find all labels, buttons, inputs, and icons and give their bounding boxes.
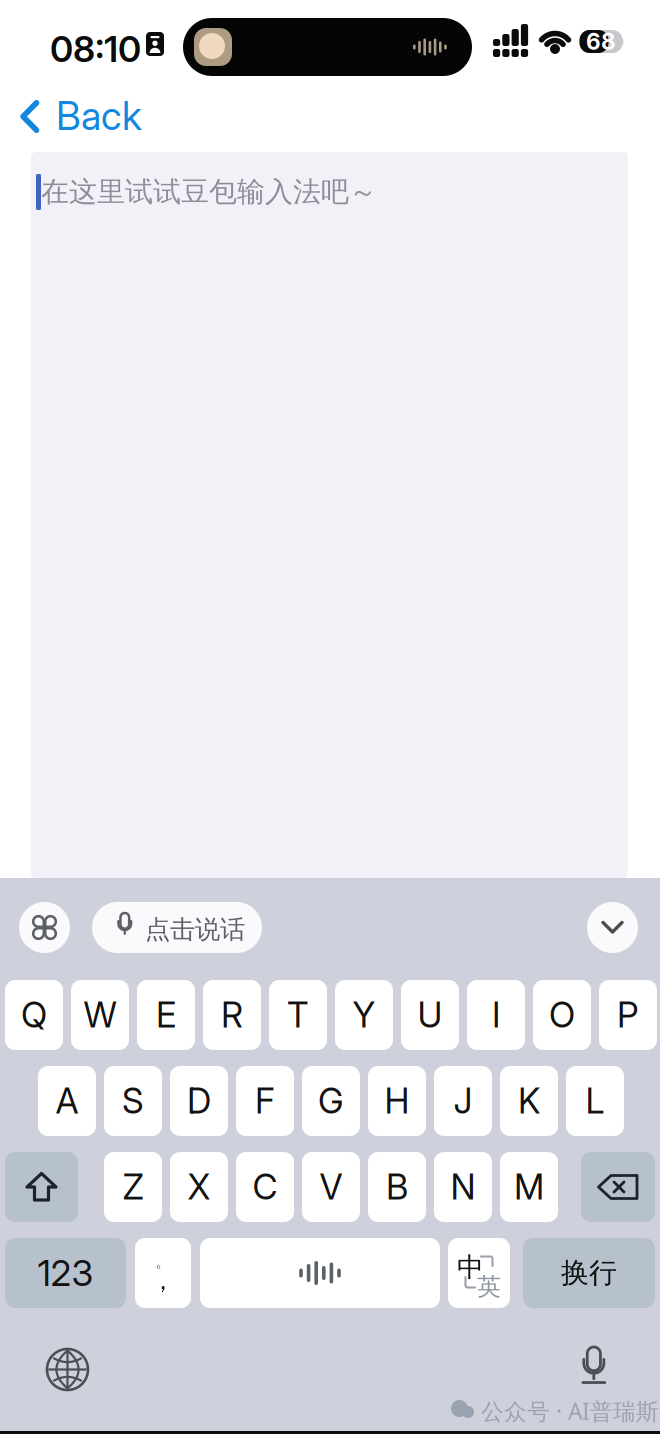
staticText: ， bbox=[151, 1266, 175, 1296]
button[interactable]: G bbox=[302, 1066, 360, 1136]
button[interactable]: Hide keyboard bbox=[587, 902, 638, 953]
staticText: Z bbox=[122, 1166, 143, 1208]
button[interactable]: Z bbox=[104, 1152, 162, 1222]
button[interactable]: I bbox=[467, 980, 525, 1050]
staticText: R bbox=[221, 994, 243, 1036]
button[interactable]: Comma bbox=[135, 1238, 191, 1308]
button[interactable]: U bbox=[401, 980, 459, 1050]
staticText: D bbox=[187, 1080, 211, 1122]
button[interactable]: B bbox=[368, 1152, 426, 1222]
button[interactable]: Y bbox=[335, 980, 393, 1050]
staticText: Back bbox=[56, 93, 142, 139]
staticText: I bbox=[492, 994, 500, 1036]
button[interactable]: L bbox=[566, 1066, 624, 1136]
button[interactable]: S bbox=[104, 1066, 162, 1136]
staticText: Y bbox=[352, 994, 375, 1036]
button[interactable]: T bbox=[269, 980, 327, 1050]
button[interactable]: Space bbox=[200, 1238, 440, 1308]
staticText: 换行 bbox=[561, 1256, 617, 1290]
button[interactable]: V bbox=[302, 1152, 360, 1222]
staticText: H bbox=[384, 1080, 409, 1122]
button[interactable]: Dictate bbox=[567, 1333, 621, 1405]
staticText: G bbox=[318, 1080, 344, 1122]
button[interactable]: Q bbox=[5, 980, 63, 1050]
staticText: K bbox=[518, 1080, 540, 1122]
staticText: 。 bbox=[155, 1253, 170, 1271]
staticText: 中 bbox=[457, 1251, 484, 1284]
staticText: 08:10 bbox=[50, 27, 141, 71]
button[interactable]: P bbox=[599, 980, 657, 1050]
staticText: S bbox=[122, 1080, 144, 1122]
staticText: U bbox=[417, 994, 442, 1036]
button[interactable]: D bbox=[170, 1066, 228, 1136]
staticText: L bbox=[585, 1080, 604, 1122]
button[interactable]: X bbox=[170, 1152, 228, 1222]
button[interactable]: R bbox=[203, 980, 261, 1050]
button[interactable]: K bbox=[500, 1066, 558, 1136]
staticText: 英 bbox=[477, 1272, 501, 1301]
button[interactable]: Switch keyboard bbox=[33, 1335, 102, 1404]
staticText: W bbox=[83, 994, 116, 1036]
button[interactable]: J bbox=[434, 1066, 492, 1136]
button[interactable]: C bbox=[236, 1152, 294, 1222]
button[interactable]: Input panels bbox=[19, 902, 70, 953]
button[interactable]: Delete bbox=[581, 1152, 655, 1222]
staticText: J bbox=[453, 1080, 472, 1122]
staticText: O bbox=[549, 994, 575, 1036]
button[interactable]: Back bbox=[0, 94, 136, 152]
staticText: B bbox=[386, 1166, 408, 1208]
staticText: 123 bbox=[37, 1251, 93, 1295]
button[interactable]: W bbox=[71, 980, 129, 1050]
staticText: 点击说话 bbox=[145, 914, 245, 945]
staticText: T bbox=[287, 994, 309, 1036]
button[interactable]: N bbox=[434, 1152, 492, 1222]
staticText: V bbox=[319, 1166, 342, 1208]
staticText: 公众号 · AI普瑞斯 bbox=[481, 1396, 659, 1426]
button[interactable]: 123 bbox=[5, 1238, 126, 1308]
staticText: N bbox=[450, 1166, 475, 1208]
staticText: 在这里试试豆包输入法吧～ bbox=[41, 175, 377, 209]
button[interactable]: 点击说话 bbox=[92, 902, 262, 953]
button[interactable]: 换行 bbox=[523, 1238, 655, 1308]
staticText: M bbox=[514, 1166, 544, 1208]
button[interactable]: E bbox=[137, 980, 195, 1050]
button[interactable]: F bbox=[236, 1066, 294, 1136]
button[interactable]: Shift bbox=[5, 1152, 78, 1222]
staticText: P bbox=[617, 994, 639, 1036]
staticText: Q bbox=[21, 994, 47, 1036]
staticText: A bbox=[55, 1080, 78, 1122]
button[interactable]: M bbox=[500, 1152, 558, 1222]
staticText: X bbox=[187, 1166, 210, 1208]
button[interactable]: O bbox=[533, 980, 591, 1050]
button[interactable]: H bbox=[368, 1066, 426, 1136]
button[interactable]: A bbox=[38, 1066, 96, 1136]
staticText: F bbox=[255, 1080, 275, 1122]
button[interactable]: Chinese English toggle bbox=[448, 1238, 510, 1308]
staticText: E bbox=[156, 994, 176, 1036]
staticText: 68 bbox=[586, 28, 616, 55]
staticText: C bbox=[252, 1166, 277, 1208]
